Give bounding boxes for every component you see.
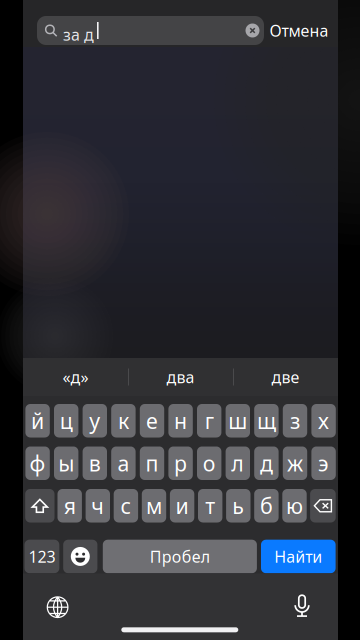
button[interactable]: у	[83, 404, 107, 437]
button[interactable]: я	[57, 489, 82, 522]
button[interactable]: щ	[254, 404, 279, 437]
button[interactable]: л	[226, 446, 250, 480]
staticText: две	[271, 366, 299, 388]
button[interactable]: ь	[226, 489, 250, 522]
staticText: Пробел	[150, 546, 210, 567]
staticText: д	[260, 449, 273, 477]
button[interactable]: Пробел	[103, 540, 257, 573]
staticText: ш	[228, 407, 247, 435]
staticText: р	[174, 449, 187, 477]
button[interactable]: Emoji	[63, 540, 97, 573]
staticText: щ	[257, 407, 276, 435]
staticText: б	[260, 492, 273, 520]
staticText: «д»	[62, 366, 88, 388]
button[interactable]: г	[197, 404, 221, 437]
button[interactable]: за д	[37, 16, 264, 45]
button[interactable]: ц	[54, 404, 78, 437]
button[interactable]: Найти	[261, 540, 336, 573]
button[interactable]: ю	[282, 489, 307, 522]
button[interactable]: о	[197, 446, 221, 480]
staticText: у	[89, 407, 100, 435]
staticText: Найти	[274, 546, 322, 567]
button[interactable]: и	[170, 489, 194, 522]
staticText: а	[117, 449, 129, 477]
button[interactable]: Delete	[310, 489, 336, 522]
button[interactable]: т	[198, 489, 222, 522]
button[interactable]: к	[111, 404, 136, 437]
staticText: т	[205, 492, 215, 520]
button[interactable]: ш	[226, 404, 250, 437]
button[interactable]: х	[311, 404, 336, 437]
button[interactable]: две	[233, 358, 338, 396]
button[interactable]: м	[142, 489, 166, 522]
button[interactable]: н	[168, 404, 193, 437]
staticText: э	[318, 449, 329, 477]
button[interactable]: п	[140, 446, 164, 480]
staticText: два	[166, 366, 194, 388]
staticText: к	[118, 407, 129, 435]
button[interactable]: Switch keyboard	[47, 596, 68, 618]
button[interactable]: й	[25, 404, 50, 437]
staticText: ф	[30, 449, 46, 477]
staticText: ь	[232, 492, 244, 520]
button[interactable]: ы	[54, 446, 78, 480]
button[interactable]: з	[283, 404, 307, 437]
staticText: о	[203, 449, 216, 477]
button[interactable]: д	[254, 446, 279, 480]
button[interactable]: «д»	[23, 358, 128, 396]
button[interactable]: ж	[283, 446, 307, 480]
staticText: ж	[287, 449, 303, 477]
staticText: я	[64, 492, 76, 520]
staticText: е	[146, 407, 158, 435]
button[interactable]: Clear text	[245, 23, 259, 37]
staticText: в	[89, 449, 101, 477]
button[interactable]: два	[128, 358, 233, 396]
staticText: ю	[286, 492, 303, 520]
staticText: за д	[63, 24, 94, 45]
staticText: 123	[28, 546, 55, 567]
staticText: п	[145, 449, 158, 477]
staticText: й	[31, 407, 44, 435]
button[interactable]: с	[114, 489, 138, 522]
staticText: х	[318, 407, 329, 435]
staticText: л	[231, 449, 244, 477]
staticText: г	[205, 407, 214, 435]
button[interactable]: в	[83, 446, 107, 480]
staticText: ц	[60, 407, 73, 435]
button[interactable]: Отмена	[264, 16, 334, 45]
staticText: м	[146, 492, 162, 520]
button[interactable]: Dictation	[294, 594, 310, 618]
staticText: с	[120, 492, 131, 520]
staticText: и	[176, 492, 189, 520]
button[interactable]: б	[254, 489, 279, 522]
button[interactable]: р	[168, 446, 193, 480]
staticText: Отмена	[269, 20, 328, 41]
button[interactable]: ч	[86, 489, 110, 522]
button[interactable]: а	[111, 446, 136, 480]
staticText: ы	[58, 449, 74, 477]
button[interactable]: Shift	[25, 489, 54, 522]
button[interactable]: 123	[24, 540, 59, 573]
button[interactable]: е	[140, 404, 164, 437]
button[interactable]: э	[311, 446, 336, 480]
button[interactable]: ф	[25, 446, 50, 480]
staticText: ч	[91, 492, 104, 520]
staticText: з	[290, 407, 300, 435]
staticText: н	[174, 407, 187, 435]
